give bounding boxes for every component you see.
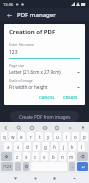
button[interactable]: b bbox=[50, 152, 57, 161]
button[interactable]: e bbox=[18, 132, 25, 141]
button[interactable]: v bbox=[41, 152, 48, 161]
staticText: o bbox=[74, 134, 77, 140]
button[interactable]: w bbox=[9, 132, 16, 141]
button[interactable]: r bbox=[27, 132, 34, 141]
button[interactable]: CREATE bbox=[61, 94, 80, 101]
staticText: Fit width or height bbox=[9, 84, 48, 90]
button[interactable]: y bbox=[45, 132, 52, 141]
button[interactable]: l bbox=[78, 142, 85, 151]
button[interactable]: n bbox=[59, 152, 66, 161]
button[interactable]: p bbox=[81, 132, 88, 141]
button[interactable]: f bbox=[33, 142, 40, 151]
staticText: w bbox=[11, 134, 15, 140]
staticText: e bbox=[20, 134, 23, 140]
button[interactable]: u bbox=[54, 132, 61, 141]
button[interactable]: a bbox=[4, 142, 12, 151]
staticText: d bbox=[26, 144, 29, 150]
staticText: f bbox=[36, 144, 38, 150]
button[interactable]: Home bbox=[30, 173, 40, 183]
button[interactable]: Fit width or height bbox=[9, 84, 80, 90]
button[interactable]: Voice input bbox=[79, 124, 87, 132]
button[interactable]: Shift bbox=[1, 152, 12, 161]
staticText: b bbox=[52, 154, 55, 160]
button[interactable]: Search bbox=[15, 124, 23, 132]
staticText: m bbox=[69, 154, 74, 160]
staticText: Creation of PDF bbox=[9, 28, 56, 36]
staticText: x bbox=[25, 154, 28, 160]
button[interactable]: GIF bbox=[41, 124, 49, 132]
staticText: Scale of image bbox=[9, 78, 33, 83]
staticText: i bbox=[66, 134, 68, 140]
staticText: k bbox=[71, 144, 74, 150]
button[interactable]: Recents bbox=[49, 173, 59, 183]
staticText: ?123 bbox=[3, 164, 12, 169]
button[interactable]: j bbox=[60, 142, 67, 151]
button[interactable]: Create PDF from images bbox=[10, 111, 79, 122]
button[interactable]: q bbox=[1, 132, 7, 141]
staticText: Letter (21.6cm x 27.9cm) bbox=[9, 69, 61, 75]
staticText: h bbox=[53, 144, 56, 150]
staticText: a bbox=[7, 144, 10, 150]
button[interactable]: Backspace bbox=[77, 152, 88, 161]
button[interactable]: Emoji bbox=[28, 124, 36, 132]
button[interactable]: CANCEL bbox=[37, 94, 57, 101]
staticText: g bbox=[44, 144, 47, 150]
button[interactable]: Back bbox=[10, 173, 20, 183]
staticText: p bbox=[83, 134, 86, 140]
button[interactable]: Enter bbox=[77, 162, 88, 171]
button[interactable]: Clipboard bbox=[53, 124, 61, 132]
staticText: t bbox=[39, 134, 41, 140]
staticText: 13:06 bbox=[3, 2, 14, 7]
button[interactable]: Hide keyboard bbox=[69, 173, 79, 183]
button[interactable]: i bbox=[63, 132, 70, 141]
staticText: Page size bbox=[9, 63, 25, 68]
button[interactable]: More bbox=[66, 124, 74, 132]
button[interactable]: m bbox=[68, 152, 75, 161]
button[interactable]: k bbox=[69, 142, 76, 151]
staticText: z bbox=[16, 154, 19, 160]
button[interactable]: x bbox=[23, 152, 30, 161]
staticText: y bbox=[47, 134, 50, 140]
button[interactable]: o bbox=[72, 132, 79, 141]
button[interactable]: s bbox=[14, 142, 22, 151]
staticText: PDF manager bbox=[17, 11, 56, 19]
staticText: c bbox=[34, 154, 37, 160]
button[interactable]: Back bbox=[4, 10, 14, 20]
button[interactable]: d bbox=[24, 142, 31, 151]
staticText: 123 bbox=[9, 49, 18, 56]
button[interactable]: h bbox=[51, 142, 58, 151]
staticText: l bbox=[81, 144, 83, 150]
staticText: Create PDF from images bbox=[19, 114, 71, 120]
button[interactable]: Language bbox=[23, 162, 29, 171]
staticText: CANCEL bbox=[39, 95, 55, 100]
button[interactable]: Comma bbox=[15, 162, 21, 171]
staticText: j bbox=[63, 144, 65, 150]
staticText: s bbox=[17, 144, 20, 150]
staticText: CREATE bbox=[63, 95, 78, 100]
button[interactable]: g bbox=[42, 142, 49, 151]
button[interactable]: c bbox=[32, 152, 39, 161]
staticText: u bbox=[56, 134, 59, 140]
button[interactable]: z bbox=[14, 152, 21, 161]
staticText: r bbox=[30, 134, 32, 140]
staticText: v bbox=[43, 154, 46, 160]
button[interactable]: t bbox=[36, 132, 43, 141]
staticText: Enter file name bbox=[9, 42, 34, 47]
button[interactable]: ?123 bbox=[1, 162, 13, 171]
button[interactable]: Letter (21.6cm x 27.9cm) bbox=[9, 69, 80, 75]
button[interactable]: Collapse bbox=[2, 124, 10, 132]
button[interactable]: Period bbox=[69, 162, 75, 171]
staticText: n bbox=[61, 154, 64, 160]
staticText: q bbox=[3, 134, 6, 140]
